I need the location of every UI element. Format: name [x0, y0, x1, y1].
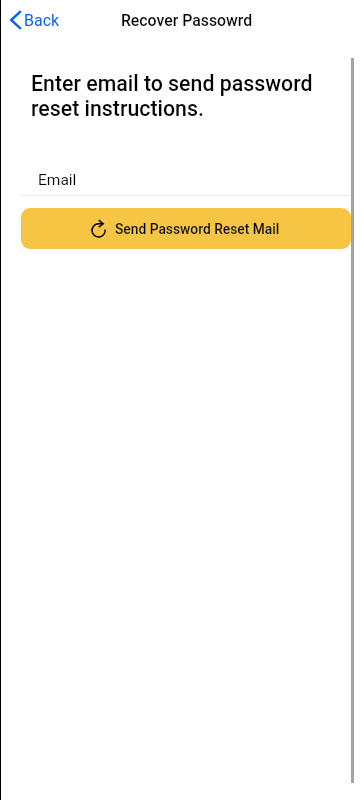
staticText: Enter email to send password reset instr… [31, 71, 319, 121]
button[interactable]: Back [6, 6, 64, 34]
staticText: Send Password Reset Mail [115, 221, 280, 237]
button[interactable]: Email input field [20, 162, 352, 196]
button[interactable]: Send Password Reset Mail [21, 208, 351, 249]
staticText: Recover Passowrd [121, 11, 253, 30]
staticText: Back [24, 11, 60, 30]
staticText: Email [38, 171, 77, 189]
